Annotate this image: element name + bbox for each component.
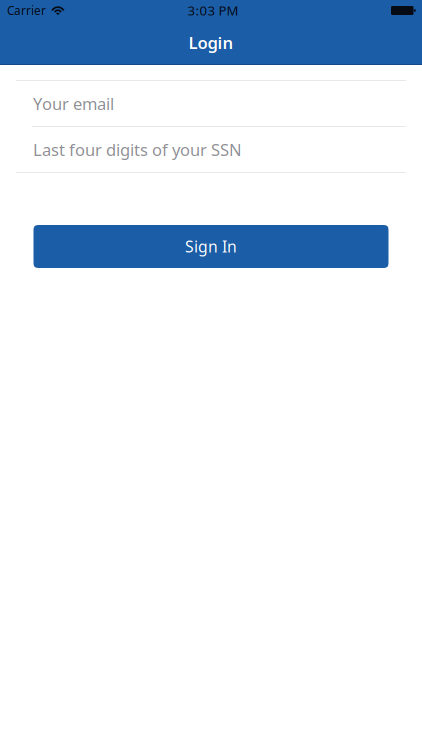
staticText: 3:03 PM <box>187 1 238 19</box>
staticText: Your email <box>33 92 114 115</box>
staticText: Login <box>188 31 233 54</box>
button[interactable]: Last four digits of your SSN <box>0 127 422 172</box>
button[interactable]: Your email <box>0 81 422 126</box>
staticText: Carrier <box>7 2 46 18</box>
staticText: Last four digits of your SSN <box>33 138 242 161</box>
staticText: Sign In <box>185 236 237 257</box>
button[interactable]: Sign In <box>33 225 388 268</box>
